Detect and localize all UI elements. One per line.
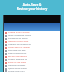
button[interactable]: Tracking number (4, 64, 60, 67)
staticText: Tracking number (8, 64, 26, 67)
staticText: Project timeline v2 (8, 58, 27, 61)
button[interactable]: https://example.com/x (4, 34, 60, 37)
button[interactable]: Email to the team (4, 61, 60, 64)
staticText: https://example.com/x (8, 34, 32, 37)
staticText: Quote from article (8, 67, 27, 70)
button[interactable]: Order #88412 receipt (4, 46, 60, 49)
staticText: Recipe ingredients (8, 55, 28, 58)
staticText: Address 221B Baker St (8, 43, 32, 46)
button[interactable]: Quote from article (4, 67, 60, 70)
staticText: Passcode for wifi (8, 49, 26, 52)
button[interactable]: Recipe ingredients (4, 55, 60, 58)
button[interactable]: Shopping list items (4, 37, 60, 40)
button[interactable]: Copied from Chrome (4, 31, 60, 34)
staticText: Email to the team (8, 61, 27, 64)
button[interactable]: Phone 555 0134 (4, 70, 60, 72)
button[interactable]: Address 221B Baker St (4, 43, 60, 46)
staticText: Shopping list items (8, 37, 28, 40)
button[interactable]: Project timeline v2 (4, 58, 60, 61)
staticText: Copied from Chrome (8, 31, 30, 34)
staticText: Phone 555 0134 (8, 70, 25, 72)
staticText: Flight booking ref (8, 52, 27, 55)
button[interactable]: Meeting notes draft (4, 40, 60, 43)
button[interactable]: Passcode for wifi (4, 49, 60, 52)
staticText: Meeting notes draft (8, 40, 29, 43)
staticText: Auto-Save & Review your history (0, 3, 64, 11)
button[interactable]: Flight booking ref (4, 52, 60, 55)
staticText: Order #88412 receipt (8, 46, 30, 49)
